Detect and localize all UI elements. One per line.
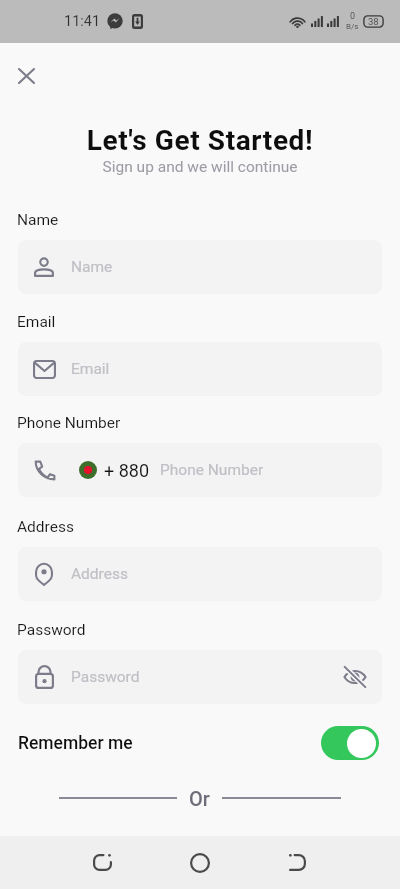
staticText: 0 bbox=[350, 11, 356, 22]
staticText: Remember me bbox=[18, 733, 133, 754]
staticText: Email bbox=[71, 360, 110, 378]
staticText: Address bbox=[71, 565, 128, 583]
staticText: Password bbox=[71, 668, 140, 686]
staticText: 11:41 bbox=[64, 13, 101, 30]
staticText: Name bbox=[71, 258, 113, 276]
staticText: Password bbox=[17, 621, 86, 639]
button[interactable]: Home bbox=[173, 836, 226, 889]
button[interactable]: + 880 bbox=[18, 443, 382, 497]
staticText: Email bbox=[17, 313, 56, 331]
staticText: Phone Number bbox=[160, 461, 264, 479]
staticText: + 880 bbox=[104, 460, 150, 481]
staticText: Let's Get Started! bbox=[0, 124, 400, 157]
staticText: 38 bbox=[368, 16, 379, 27]
button[interactable]: Name bbox=[18, 240, 382, 294]
button[interactable]: Address bbox=[18, 547, 382, 601]
button[interactable]: Password bbox=[18, 650, 382, 704]
staticText: Or bbox=[189, 787, 210, 810]
button[interactable]: Remember me toggle bbox=[321, 726, 379, 760]
staticText: B/s bbox=[346, 22, 359, 31]
button[interactable]: Recents bbox=[271, 836, 324, 889]
button[interactable]: Close bbox=[9, 58, 44, 93]
staticText: Sign up and we will continue bbox=[0, 158, 400, 176]
staticText: Name bbox=[17, 211, 59, 229]
button[interactable]: Back bbox=[76, 836, 129, 889]
button[interactable]: Email bbox=[18, 342, 382, 396]
button[interactable]: Show password bbox=[340, 662, 370, 692]
staticText: Address bbox=[17, 518, 74, 536]
staticText: Phone Number bbox=[17, 414, 121, 432]
